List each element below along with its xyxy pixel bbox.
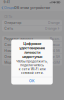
staticText: Модель SIM	[4, 60, 24, 65]
staticText: Роуминг данных	[4, 37, 33, 41]
staticText: 9:41	[3, 0, 9, 4]
button[interactable]: Опции	[0, 5, 15, 11]
staticText: Сеть	[4, 26, 13, 31]
button[interactable]: Сеть	[2, 26, 62, 31]
staticText: +33 6 12 34 56	[37, 49, 60, 53]
staticText: eSIM	[52, 60, 60, 65]
button[interactable]: Модель SIM	[2, 60, 62, 65]
staticText: Номер телефона	[4, 49, 33, 53]
button[interactable]: Состояние SIM	[2, 42, 62, 48]
button[interactable]: Оператор	[2, 54, 62, 60]
staticText: Orange SA	[43, 54, 60, 59]
button[interactable]: Номер телефона	[2, 48, 62, 54]
staticText: Активна	[46, 43, 60, 47]
staticText: Выкл.	[50, 37, 60, 41]
staticText: Orange	[48, 20, 60, 25]
staticText: Опции	[4, 6, 15, 10]
staticText: Цифровое удостоверение личности недоступ…	[19, 41, 45, 59]
button[interactable]: OK	[11, 77, 53, 84]
staticText: Чтобы продолжить, подключитесь к сети Wi…	[16, 59, 48, 75]
staticText: Об этом устройстве	[14, 6, 50, 10]
staticText: Оператор	[4, 54, 21, 59]
button[interactable]: Роуминг данных	[2, 36, 62, 42]
staticText: СЕТЬ	[4, 15, 12, 19]
staticText: Orange F	[45, 26, 60, 31]
staticText: OK	[29, 79, 35, 83]
staticText: Оператор	[4, 20, 21, 25]
staticText: Состояние SIM	[4, 43, 30, 47]
button[interactable]: Оператор	[2, 20, 62, 26]
